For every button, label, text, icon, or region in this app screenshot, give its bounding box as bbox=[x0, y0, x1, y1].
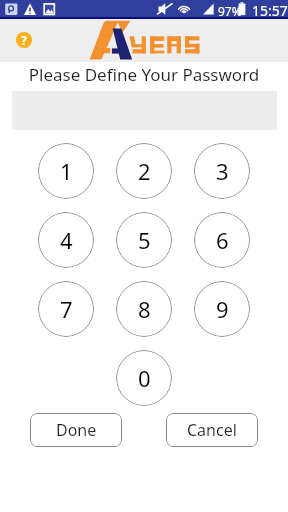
staticText: 6 bbox=[216, 225, 229, 255]
button[interactable]: Done bbox=[30, 413, 122, 447]
staticText: ? bbox=[21, 32, 27, 48]
staticText: 4 bbox=[60, 225, 73, 255]
staticText: 0 bbox=[138, 363, 151, 393]
button[interactable]: 9 bbox=[194, 281, 250, 337]
staticText: 97% bbox=[218, 3, 242, 19]
button[interactable]: 5 bbox=[116, 212, 172, 268]
staticText: Done bbox=[56, 419, 97, 441]
button[interactable]: 6 bbox=[194, 212, 250, 268]
staticText: Please Define Your Password bbox=[0, 63, 288, 86]
button[interactable]: 2 bbox=[116, 143, 172, 199]
button[interactable]: 1 bbox=[38, 143, 94, 199]
button[interactable]: 3 bbox=[194, 143, 250, 199]
staticText: 7 bbox=[60, 294, 73, 324]
staticText: 2 bbox=[138, 156, 151, 186]
button[interactable]: 0 bbox=[116, 350, 172, 406]
staticText: 9 bbox=[216, 294, 229, 324]
staticText: 1 bbox=[60, 156, 73, 186]
button[interactable]: 7 bbox=[38, 281, 94, 337]
staticText: Cancel bbox=[187, 419, 237, 441]
button[interactable]: Help bbox=[16, 32, 32, 48]
button[interactable]: 4 bbox=[38, 212, 94, 268]
staticText: 15:57 bbox=[252, 1, 288, 19]
staticText: 3 bbox=[216, 156, 229, 186]
staticText: 8 bbox=[138, 294, 151, 324]
button[interactable]: 8 bbox=[116, 281, 172, 337]
button[interactable]: Cancel bbox=[166, 413, 258, 447]
staticText: 5 bbox=[138, 225, 151, 255]
